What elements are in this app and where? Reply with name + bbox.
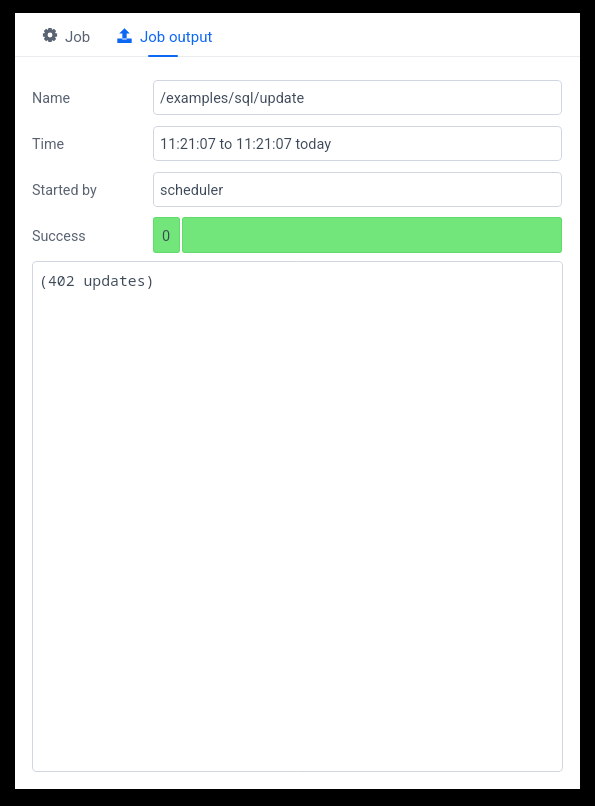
staticText: Success (32, 228, 86, 245)
staticText: scheduler (160, 182, 224, 199)
staticText: /examples/sql/update (160, 90, 305, 107)
staticText: Started by (32, 182, 97, 199)
other: Job output (117, 28, 132, 43)
staticText: 0 (162, 228, 171, 245)
staticText: Time (32, 136, 65, 153)
button[interactable]: Job settings (43, 25, 91, 46)
other: Job settings (43, 28, 57, 42)
button[interactable] (182, 217, 562, 253)
staticText: 11:21:07 to 11:21:07 today (160, 136, 332, 153)
button[interactable]: 0 (153, 217, 180, 253)
button[interactable]: scheduler (153, 172, 562, 207)
button[interactable]: Job output (117, 25, 213, 46)
button[interactable]: /examples/sql/update (153, 80, 562, 115)
staticText: Name (32, 90, 71, 107)
staticText: (402 updates) (39, 270, 155, 290)
button[interactable]: 11:21:07 to 11:21:07 today (153, 126, 562, 161)
staticText: Job (65, 28, 91, 46)
staticText: Job output (140, 28, 213, 46)
